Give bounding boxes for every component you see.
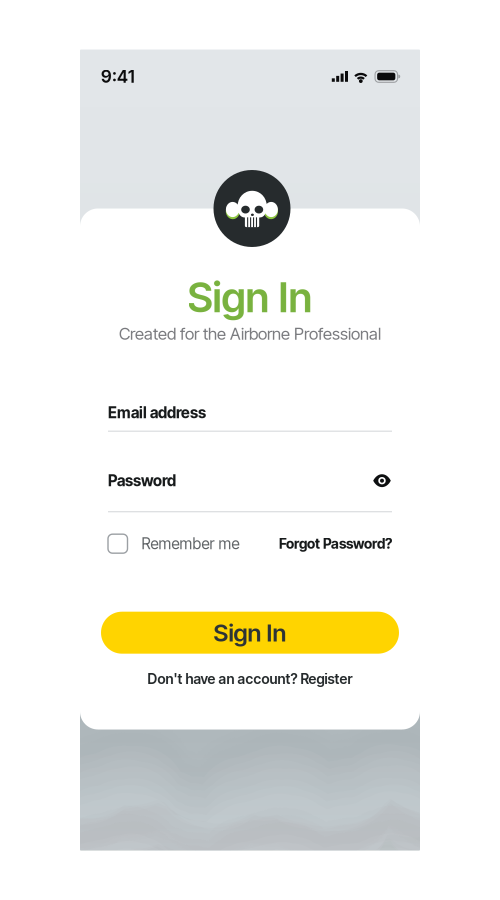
staticText: 9:41 <box>101 66 135 87</box>
staticText: Don't have an account? Register <box>147 670 352 687</box>
staticText: Forgot Password? <box>279 535 392 552</box>
button[interactable]: Don't have an account? Register <box>147 670 352 687</box>
staticText: Password <box>108 471 176 490</box>
button[interactable]: Forgot Password? <box>279 535 392 552</box>
staticText: Sign In <box>187 272 312 322</box>
staticText: Sign In <box>213 618 286 647</box>
staticText: Email address <box>108 403 206 422</box>
button[interactable]: Show password <box>372 470 392 491</box>
staticText: Created for the Airborne Professional <box>119 323 381 344</box>
button[interactable]: Remember me <box>108 534 239 553</box>
button[interactable]: Sign In <box>101 612 399 654</box>
staticText: Remember me <box>141 534 239 553</box>
